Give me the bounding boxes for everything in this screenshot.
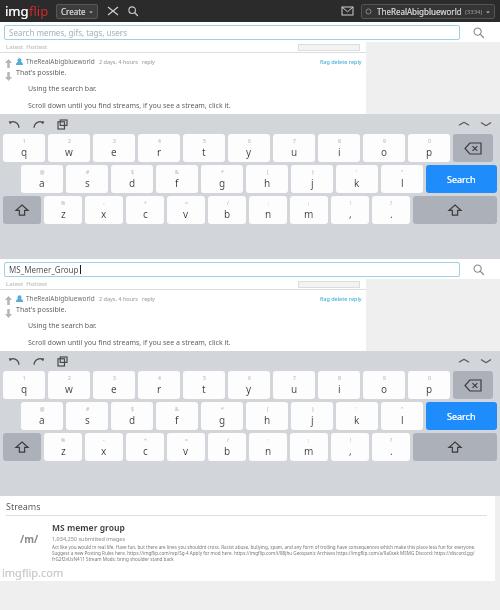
- button[interactable]: 3: [93, 134, 135, 162]
- button[interactable]: 4: [138, 134, 180, 162]
- button[interactable]: 9: [363, 134, 405, 162]
- button[interactable]: /: [208, 433, 246, 461]
- button[interactable]: Downvote: [3, 71, 13, 81]
- button[interactable]: -: [85, 433, 123, 461]
- button[interactable]: &: [156, 402, 198, 430]
- button[interactable]: 6: [228, 134, 270, 162]
- button[interactable]: 2: [48, 371, 90, 399]
- button[interactable]: Clipboard: [54, 353, 70, 369]
- button[interactable]: (: [246, 165, 288, 193]
- staticText: :: [268, 200, 270, 207]
- button[interactable]: ?: [372, 433, 410, 461]
- button[interactable]: TheRealAbigblueworld: [361, 4, 495, 19]
- button[interactable]: #: [66, 165, 108, 193]
- button[interactable]: 7: [273, 371, 315, 399]
- button[interactable]: :: [249, 196, 287, 224]
- button[interactable]: :: [249, 433, 287, 461]
- button[interactable]: !: [331, 433, 369, 461]
- button[interactable]: Next: [478, 116, 494, 132]
- button[interactable]: MS_Memer_Group: [4, 262, 460, 277]
- button[interactable]: ;: [290, 196, 328, 224]
- button[interactable]: !: [331, 196, 369, 224]
- button[interactable]: Backspace: [453, 134, 493, 162]
- staticText: 8: [338, 375, 341, 382]
- staticText: +: [144, 437, 147, 444]
- button[interactable]: Shuffle: [106, 4, 120, 18]
- button[interactable]: @: [21, 402, 63, 430]
- button[interactable]: ): [291, 402, 333, 430]
- button[interactable]: 1: [3, 134, 45, 162]
- button[interactable]: Downvote: [3, 308, 13, 318]
- staticText: That's possible.: [16, 305, 67, 315]
- button[interactable]: ?: [372, 196, 410, 224]
- button[interactable]: ': [336, 402, 378, 430]
- button[interactable]: Previous: [456, 353, 472, 369]
- button[interactable]: Undo: [6, 353, 22, 369]
- button[interactable]: -: [85, 196, 123, 224]
- button[interactable]: 9: [363, 371, 405, 399]
- button[interactable]: 1: [3, 371, 45, 399]
- button[interactable]: ): [291, 165, 333, 193]
- button[interactable]: Create: [56, 4, 98, 19]
- button[interactable]: ": [381, 165, 423, 193]
- staticText: ?: [390, 200, 393, 207]
- button[interactable]: Clipboard: [54, 116, 70, 132]
- button[interactable]: ;: [290, 433, 328, 461]
- button[interactable]: /: [208, 196, 246, 224]
- staticText: MS_Memer_Group: [9, 264, 79, 275]
- button[interactable]: Messages: [339, 3, 355, 19]
- button[interactable]: 7: [273, 134, 315, 162]
- button[interactable]: $: [111, 402, 153, 430]
- button[interactable]: 0: [408, 134, 450, 162]
- staticText: (3334): [465, 8, 483, 16]
- button[interactable]: @: [21, 165, 63, 193]
- button[interactable]: Search: [426, 165, 497, 193]
- staticText: Latest Hottest: [6, 280, 48, 288]
- button[interactable]: Search: [460, 22, 496, 42]
- button[interactable]: 3: [93, 371, 135, 399]
- button[interactable]: %: [44, 196, 82, 224]
- button[interactable]: Redo: [30, 353, 46, 369]
- button[interactable]: Upvote: [3, 58, 13, 68]
- button[interactable]: Upvote: [3, 295, 13, 305]
- button[interactable]: =: [167, 196, 205, 224]
- button[interactable]: &: [156, 165, 198, 193]
- button[interactable]: 8: [318, 371, 360, 399]
- button[interactable]: Search: [460, 259, 496, 279]
- button[interactable]: Shift: [3, 196, 41, 224]
- staticText: Latest Hottest: [6, 43, 48, 51]
- button[interactable]: Backspace: [453, 371, 493, 399]
- button[interactable]: (: [246, 402, 288, 430]
- button[interactable]: Shift: [413, 433, 497, 461]
- button[interactable]: Search: [126, 4, 140, 18]
- button[interactable]: 6: [228, 371, 270, 399]
- button[interactable]: +: [126, 433, 164, 461]
- button[interactable]: Next: [478, 353, 494, 369]
- button[interactable]: *: [201, 402, 243, 430]
- staticText: 4: [158, 138, 161, 145]
- button[interactable]: Undo: [6, 116, 22, 132]
- button[interactable]: /m/: [6, 522, 495, 562]
- button[interactable]: #: [66, 402, 108, 430]
- button[interactable]: 5: [183, 371, 225, 399]
- button[interactable]: 4: [138, 371, 180, 399]
- button[interactable]: ': [336, 165, 378, 193]
- button[interactable]: 0: [408, 371, 450, 399]
- button[interactable]: $: [111, 165, 153, 193]
- button[interactable]: 5: [183, 134, 225, 162]
- button[interactable]: =: [167, 433, 205, 461]
- button[interactable]: Search: [426, 402, 497, 430]
- button[interactable]: Previous: [456, 116, 472, 132]
- button[interactable]: Shift: [413, 196, 497, 224]
- button[interactable]: Search memes, gifs, tags, users: [4, 25, 460, 40]
- button[interactable]: Shift: [3, 433, 41, 461]
- button[interactable]: 8: [318, 134, 360, 162]
- button[interactable]: 2: [48, 134, 90, 162]
- button[interactable]: %: [44, 433, 82, 461]
- button[interactable]: ": [381, 402, 423, 430]
- button[interactable]: Redo: [30, 116, 46, 132]
- button[interactable]: +: [126, 196, 164, 224]
- staticText: 0: [428, 375, 431, 382]
- button[interactable]: *: [201, 165, 243, 193]
- staticText: 4: [158, 375, 161, 382]
